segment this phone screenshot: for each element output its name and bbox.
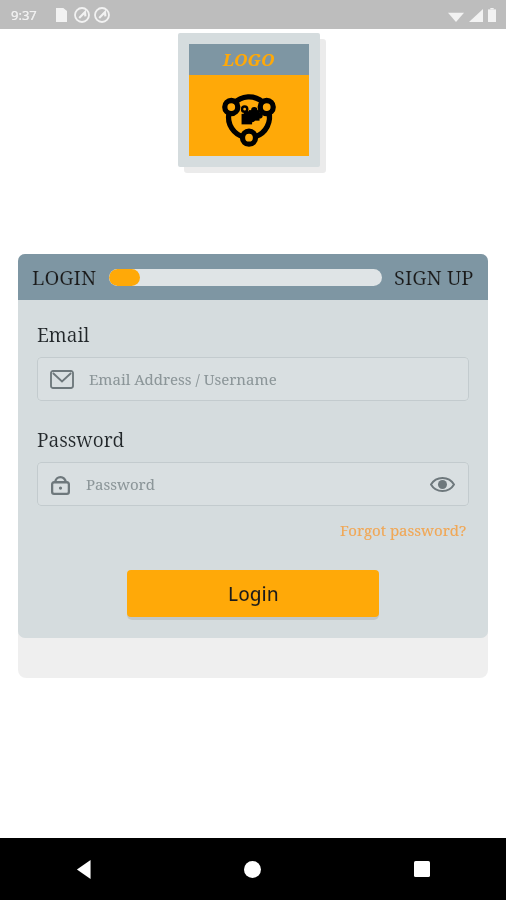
staticText: LOGIN bbox=[32, 264, 97, 291]
staticText: 9:37 bbox=[11, 6, 37, 24]
button[interactable]: Email Address / Username bbox=[37, 357, 469, 401]
staticText: Login bbox=[228, 581, 279, 607]
button[interactable]: Forgot password? bbox=[338, 518, 469, 542]
button[interactable]: Toggle login or sign up bbox=[109, 269, 382, 286]
staticText: Email bbox=[37, 322, 90, 348]
button[interactable]: Password bbox=[37, 462, 469, 506]
button[interactable]: Recent apps bbox=[337, 838, 506, 900]
button[interactable]: Home bbox=[168, 838, 337, 900]
staticText: Forgot password? bbox=[340, 520, 467, 540]
button[interactable]: Login bbox=[127, 570, 379, 617]
staticText: SIGN UP bbox=[394, 264, 474, 291]
button[interactable]: Back bbox=[0, 838, 168, 900]
button[interactable]: SIGN UP bbox=[394, 264, 474, 291]
staticText: LOGO bbox=[223, 48, 275, 71]
button[interactable]: LOGIN bbox=[32, 264, 97, 291]
button[interactable]: Show password bbox=[429, 471, 455, 497]
staticText: Email Address / Username bbox=[89, 369, 455, 389]
staticText: Password bbox=[37, 427, 125, 453]
staticText: Password bbox=[86, 474, 429, 494]
